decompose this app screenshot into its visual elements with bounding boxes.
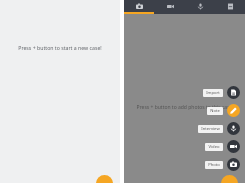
button[interactable]: Photo bbox=[205, 158, 240, 171]
staticText: Interview bbox=[201, 126, 220, 132]
button[interactable]: Notes bbox=[215, 0, 245, 12]
button[interactable]: Photos bbox=[124, 0, 155, 12]
button[interactable]: Import bbox=[203, 86, 240, 99]
staticText: Photo bbox=[208, 162, 220, 168]
button[interactable]: Note bbox=[207, 104, 240, 117]
button[interactable]: Interview bbox=[198, 122, 240, 135]
staticText: Video bbox=[208, 144, 220, 150]
button[interactable]: Videos bbox=[155, 0, 185, 12]
button[interactable]: Close menu bbox=[221, 175, 238, 183]
staticText: Press + button to add photos to this cas… bbox=[124, 104, 245, 111]
staticText: Press + button to start a new case! bbox=[0, 44, 120, 51]
staticText: Import bbox=[206, 90, 220, 96]
button[interactable]: Video bbox=[205, 140, 240, 153]
button[interactable]: Audio bbox=[185, 0, 215, 12]
staticText: Note bbox=[210, 108, 220, 114]
button[interactable]: New case bbox=[96, 175, 113, 183]
